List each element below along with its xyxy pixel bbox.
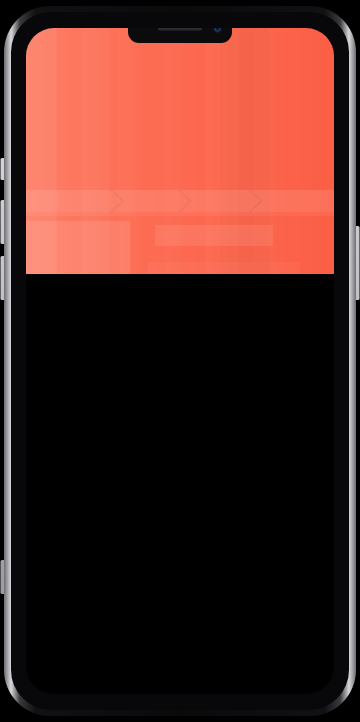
button[interactable]: Phone preview	[0, 0, 360, 722]
